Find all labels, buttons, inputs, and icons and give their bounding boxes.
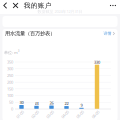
staticText: 100	[7, 93, 13, 98]
button[interactable]: 详情	[104, 31, 115, 36]
staticText: 单位: m³	[4, 50, 19, 55]
staticText: 06-05	[91, 112, 100, 117]
button[interactable]: Close	[10, 2, 21, 9]
staticText: 26	[49, 100, 53, 106]
button[interactable]: Back	[0, 2, 10, 9]
staticText: 22	[64, 101, 68, 106]
button[interactable]: More	[106, 5, 120, 6]
staticText: 我的账户	[24, 1, 52, 10]
staticText: 用水流量（百万抄表）	[5, 30, 55, 37]
staticText: 详情	[104, 31, 112, 36]
staticText: 0	[11, 106, 13, 112]
staticText: 200	[7, 79, 13, 85]
staticText: 24	[34, 101, 38, 106]
staticText: 9	[80, 103, 82, 108]
staticText: 330	[94, 59, 100, 65]
staticText: 350	[7, 59, 13, 65]
staticText: 04-05	[60, 112, 69, 117]
staticText: 03-05	[45, 112, 54, 117]
staticText: 50	[9, 100, 13, 105]
staticText: 数据截至 2024年12月31日	[37, 9, 82, 14]
staticText: 300	[7, 66, 13, 71]
staticText: 150	[7, 86, 13, 91]
staticText: 01-05	[15, 112, 24, 117]
staticText: 02-05	[30, 112, 39, 117]
staticText: 30	[19, 100, 23, 105]
staticText: 250	[7, 73, 13, 78]
staticText: 05-05	[75, 112, 84, 117]
